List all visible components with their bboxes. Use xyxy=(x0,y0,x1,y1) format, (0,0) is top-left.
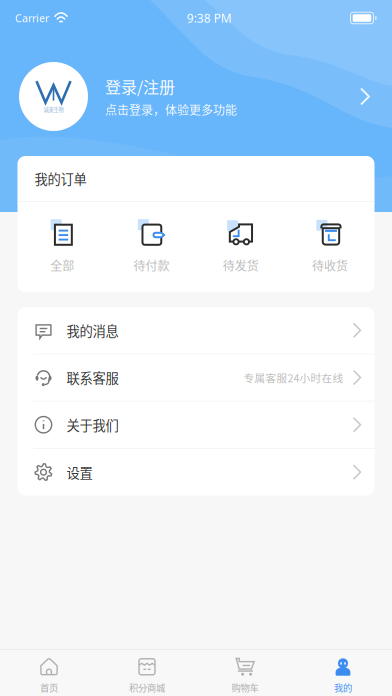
staticText: 我的订单 xyxy=(34,169,86,188)
staticText: 我的消息 xyxy=(66,321,118,340)
staticText: 设置 xyxy=(66,462,92,482)
staticText: 点击登录，体验更多功能 xyxy=(105,101,237,118)
button[interactable]: 设置 xyxy=(17,449,374,496)
button[interactable]: 购物车 xyxy=(196,648,294,696)
staticText: 专属客服24小时在线 xyxy=(243,370,343,385)
staticText: 关于我们 xyxy=(66,415,118,434)
staticText: 待发货 xyxy=(223,257,259,274)
staticText: 全部 xyxy=(50,257,74,274)
button[interactable]: 待付款 xyxy=(107,218,196,274)
staticText: 联系客服 xyxy=(66,368,118,387)
button[interactable]: 诚美生物 xyxy=(0,62,392,131)
button[interactable]: 待收货 xyxy=(285,218,374,274)
button[interactable]: 首页 xyxy=(0,648,98,696)
staticText: Carrier xyxy=(15,11,49,25)
button[interactable]: 我的消息 xyxy=(17,307,374,354)
staticText: 9:38 PM xyxy=(187,10,232,26)
staticText: 待收货 xyxy=(312,257,348,274)
button[interactable]: 待发货 xyxy=(196,218,285,274)
staticText: 我的 xyxy=(334,681,352,694)
button[interactable]: 我的 xyxy=(294,648,392,696)
button[interactable]: 积分商城 xyxy=(98,648,196,696)
staticText: 购物车 xyxy=(231,681,258,694)
staticText: 登录/注册 xyxy=(105,75,175,98)
button[interactable]: 关于我们 xyxy=(17,401,374,449)
staticText: 待付款 xyxy=(133,257,169,274)
button[interactable]: 全部 xyxy=(17,218,107,274)
staticText: 诚美生物 xyxy=(43,106,63,113)
staticText: 积分商城 xyxy=(129,681,165,694)
staticText: 首页 xyxy=(40,681,58,694)
button[interactable]: 联系客服 xyxy=(17,354,374,401)
